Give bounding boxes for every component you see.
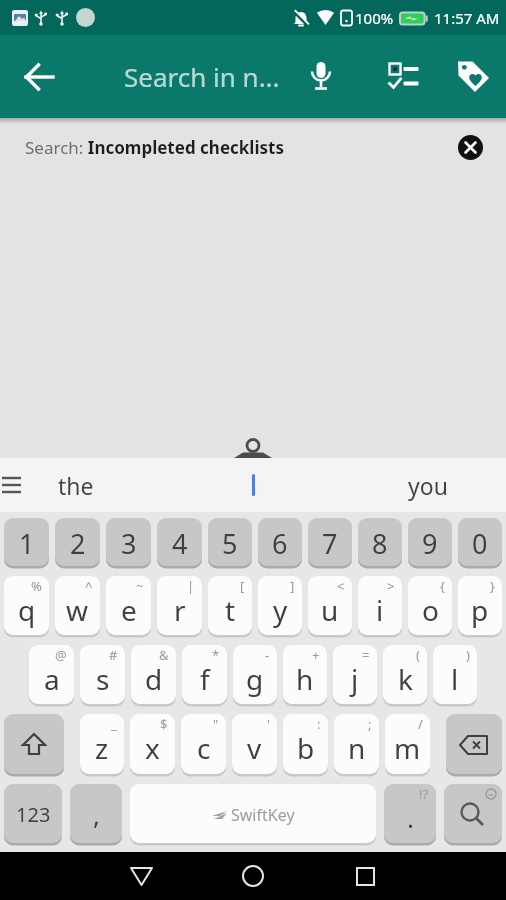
staticText: k (398, 660, 413, 698)
staticText: f (200, 660, 210, 698)
staticText: / (418, 715, 423, 733)
button[interactable] (380, 53, 428, 101)
button[interactable]: 5 (208, 518, 252, 568)
button[interactable]: b (283, 714, 328, 776)
button[interactable] (444, 784, 502, 845)
button[interactable]: 0 (458, 518, 502, 568)
staticText: e (121, 591, 137, 629)
staticText: 123 (16, 801, 51, 828)
button[interactable] (341, 852, 389, 900)
button[interactable] (229, 852, 277, 900)
button[interactable]: 4 (157, 518, 202, 568)
button[interactable]: 8 (358, 518, 402, 568)
button[interactable]: you (408, 470, 448, 501)
button[interactable]: q (4, 576, 49, 637)
button[interactable] (238, 470, 268, 500)
button[interactable]: u (308, 576, 352, 637)
staticText: 5 (222, 525, 238, 562)
button[interactable]: 3 (106, 518, 151, 568)
staticText: b (297, 729, 315, 767)
button[interactable]: z (80, 714, 124, 776)
button[interactable]: the (58, 470, 94, 501)
staticText: + (312, 646, 320, 664)
button[interactable]: , (70, 784, 122, 845)
button[interactable]: p (458, 576, 502, 637)
button[interactable]: w (55, 576, 100, 637)
staticText: j (351, 660, 359, 698)
button[interactable] (117, 852, 165, 900)
staticText: } (490, 577, 495, 595)
staticText: < (337, 577, 345, 595)
button[interactable]: g (233, 645, 277, 706)
button[interactable]: d (131, 645, 176, 706)
staticText: [ (240, 577, 245, 595)
button[interactable]: a (29, 645, 74, 706)
button[interactable] (450, 53, 498, 101)
staticText: " (213, 715, 219, 733)
button[interactable]: k (383, 645, 427, 706)
staticText: l (451, 660, 459, 698)
button[interactable]: 1 (4, 518, 49, 568)
button[interactable] (4, 714, 64, 776)
button[interactable]: h (283, 645, 327, 706)
button[interactable]: 9 (408, 518, 452, 568)
staticText: _ (111, 715, 117, 733)
button[interactable]: Search in n... (124, 59, 280, 94)
staticText: n (348, 729, 366, 767)
button[interactable]: v (232, 714, 277, 776)
button[interactable]: s (80, 645, 125, 706)
staticText: h (296, 660, 314, 698)
staticText: o (422, 591, 439, 629)
staticText: * (212, 646, 220, 664)
staticText: ' (267, 715, 270, 733)
staticText: 9 (422, 525, 438, 562)
staticText: 11:57 AM (434, 8, 500, 28)
button[interactable]: y (258, 576, 302, 637)
staticText: 1 (19, 525, 35, 562)
button[interactable]: n (334, 714, 379, 776)
button[interactable]: i (358, 576, 402, 637)
button[interactable]: e (106, 576, 151, 637)
button[interactable]: m (385, 714, 430, 776)
staticText: @ (55, 646, 67, 664)
button[interactable] (14, 51, 66, 103)
staticText: 7 (322, 525, 338, 562)
staticText: { (440, 577, 445, 595)
button[interactable]: j (333, 645, 377, 706)
staticText: 3 (121, 525, 137, 562)
button[interactable]: 2 (55, 518, 100, 568)
staticText: : (317, 715, 321, 733)
button[interactable]: . (384, 784, 436, 845)
button[interactable]: 6 (258, 518, 302, 568)
staticText: - (265, 646, 270, 664)
staticText: % (31, 577, 42, 595)
staticText: Search: Incompleted checklists (25, 136, 284, 159)
button[interactable]: t (208, 576, 252, 637)
staticText: !? (419, 785, 429, 803)
staticText: d (145, 660, 163, 698)
button[interactable]: 123 (4, 784, 62, 845)
staticText: ] (290, 577, 295, 595)
staticText: m (394, 729, 421, 767)
button[interactable]: SwiftKey (130, 784, 376, 845)
staticText: SwiftKey (231, 804, 295, 826)
staticText: 0 (472, 525, 488, 562)
button[interactable]: 7 (308, 518, 352, 568)
button[interactable] (446, 714, 502, 776)
staticText: u (321, 591, 339, 629)
button[interactable]: c (181, 714, 226, 776)
staticText: s (96, 660, 110, 698)
staticText: r (174, 591, 186, 629)
staticText: $ (160, 715, 168, 733)
staticText: | (187, 577, 195, 595)
button[interactable] (458, 135, 483, 160)
button[interactable]: o (408, 576, 452, 637)
staticText: c (197, 729, 211, 767)
staticText: # (109, 646, 118, 664)
button[interactable]: l (433, 645, 477, 706)
button[interactable]: x (130, 714, 175, 776)
staticText: w (66, 591, 89, 629)
button[interactable] (296, 52, 346, 102)
button[interactable]: r (157, 576, 202, 637)
button[interactable]: f (182, 645, 227, 706)
